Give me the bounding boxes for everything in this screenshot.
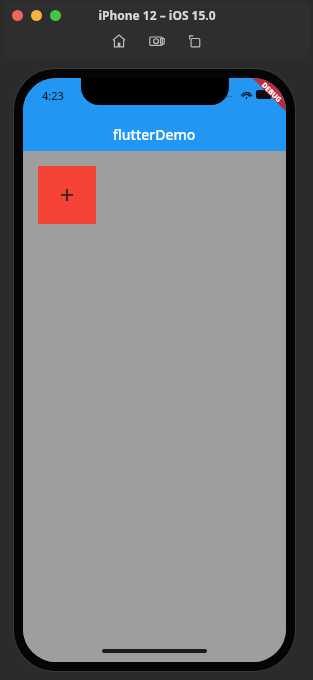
button[interactable]: Window control [12,10,23,21]
button[interactable]: Screenshot [146,30,168,52]
button[interactable]: Add [38,166,96,224]
staticText: DEBUG [259,81,284,105]
button[interactable]: Rotate [184,30,206,52]
button[interactable]: Home [108,30,130,52]
button[interactable]: Window control [50,10,61,21]
staticText: iPhone 12 – iOS 15.0 [98,7,216,23]
staticText: 4:23 [42,88,64,103]
button[interactable]: Window control [31,10,42,21]
staticText: flutterDemo [113,125,196,144]
